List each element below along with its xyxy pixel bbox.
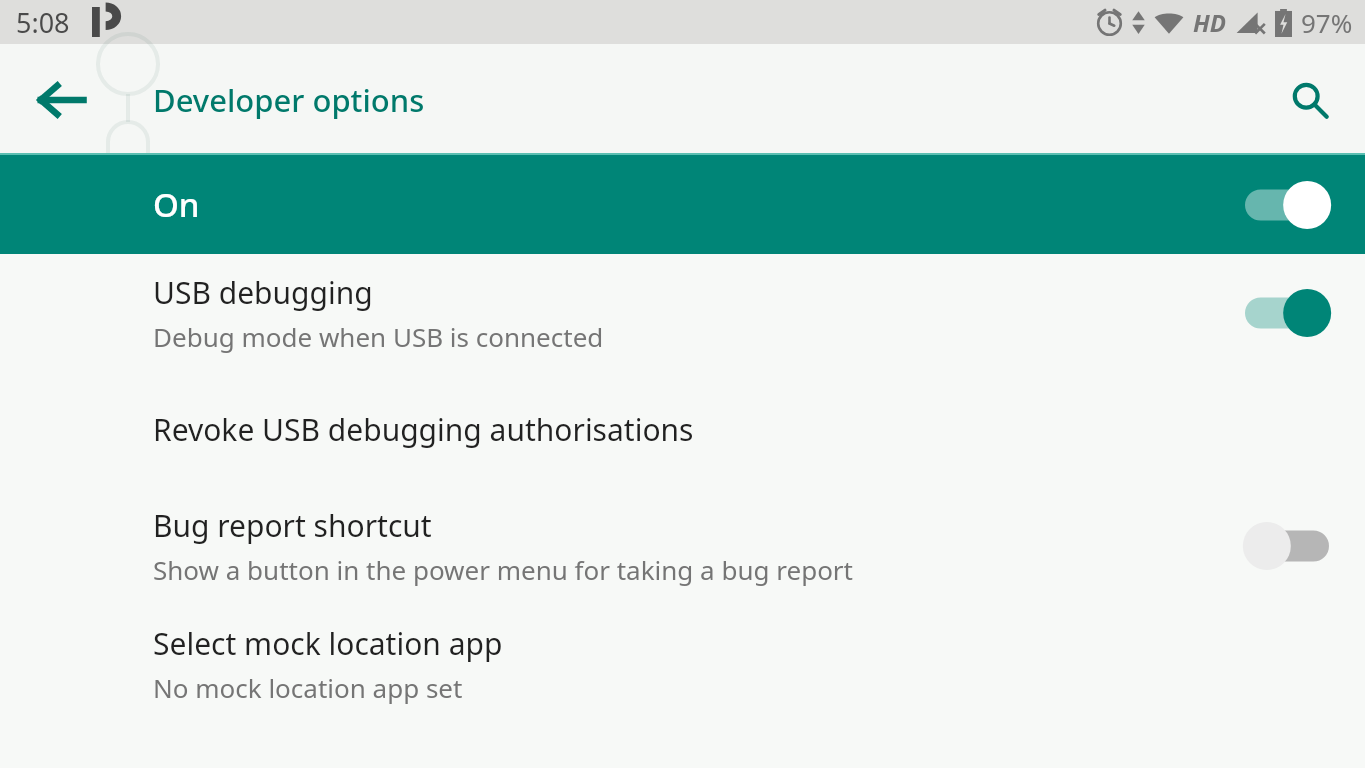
staticText: Debug mode when USB is connected xyxy=(153,319,604,354)
button[interactable]: Revoke USB debugging authorisations xyxy=(0,372,1365,487)
button[interactable]: Search xyxy=(1269,59,1351,141)
staticText: 5:08 xyxy=(16,4,70,41)
staticText: No mock location app set xyxy=(153,670,463,705)
staticText: 97% xyxy=(1301,5,1353,40)
staticText: Select mock location app xyxy=(153,623,503,664)
staticText: HD xyxy=(1193,6,1227,39)
button[interactable]: Bug report shortcut xyxy=(0,487,1365,605)
button[interactable]: On xyxy=(0,155,1365,254)
staticText: Revoke USB debugging authorisations xyxy=(153,409,694,450)
staticText: Show a button in the power menu for taki… xyxy=(153,552,853,587)
button[interactable]: Select mock location app xyxy=(0,605,1365,723)
button[interactable]: Back xyxy=(20,59,102,141)
staticText: USB debugging xyxy=(153,272,373,313)
staticText: Developer options xyxy=(153,79,425,121)
staticText: On xyxy=(153,182,200,227)
button[interactable]: USB debugging xyxy=(0,254,1365,372)
staticText: Bug report shortcut xyxy=(153,505,432,546)
